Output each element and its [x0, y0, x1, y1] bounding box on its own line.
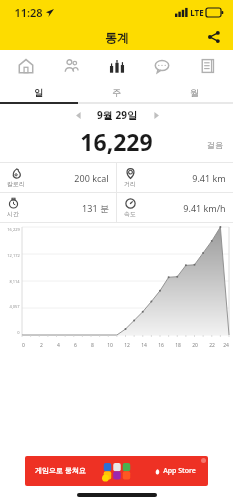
staticText: 일 [34, 87, 43, 98]
button[interactable]: Chat [142, 51, 182, 81]
staticText: 131 분 [82, 202, 109, 214]
staticText: 4,057 [9, 304, 20, 309]
button[interactable]: Statistics [97, 51, 137, 81]
staticText: 2 [40, 342, 43, 349]
staticText: 20 [192, 342, 198, 349]
staticText: 14 [141, 342, 147, 349]
staticText: LTE [190, 7, 204, 18]
button[interactable]: 주 [77, 82, 155, 102]
staticText: 16,229 [7, 227, 20, 232]
staticText: 6 [74, 342, 77, 349]
staticText: 거리 [124, 180, 136, 188]
staticText: 4 [57, 342, 60, 349]
staticText: 0 [22, 342, 25, 349]
staticText: 11:28 [14, 5, 43, 20]
staticText: 12 [124, 342, 130, 349]
button[interactable]: 시간 [0, 193, 116, 222]
staticText: 8,114 [9, 279, 20, 284]
staticText: 칼로리 [7, 180, 25, 188]
button[interactable]: 일 [0, 82, 77, 102]
button[interactable]: 거리 [117, 163, 233, 192]
staticText: 속도 [124, 210, 136, 218]
button[interactable]: Previous day [69, 106, 87, 124]
button[interactable]: Home [6, 51, 46, 81]
staticText: 16 [158, 342, 164, 349]
staticText: 9월 29일 [97, 108, 137, 122]
staticText: 24 [223, 342, 229, 349]
staticText: 18 [175, 342, 181, 349]
staticText: 12,172 [7, 253, 20, 258]
staticText: 게임으로 뭉쳐요 [35, 466, 86, 476]
staticText: 9.41 km [192, 172, 226, 184]
staticText: 10 [107, 342, 113, 349]
button[interactable]: Next day [147, 106, 165, 124]
staticText: 통계 [105, 30, 129, 45]
button[interactable]: 게임으로 뭉쳐요 [25, 456, 208, 486]
button[interactable]: Share [203, 26, 225, 48]
staticText: 0 [17, 330, 20, 335]
staticText: App Store [163, 466, 196, 476]
staticText: 월 [190, 87, 199, 98]
button[interactable]: 칼로리 [0, 163, 116, 192]
staticText: 시간 [7, 210, 19, 218]
button[interactable]: More [188, 51, 228, 81]
button[interactable]: Friends [51, 51, 91, 81]
staticText: 걸음 [207, 140, 223, 150]
staticText: 200 kcal [74, 172, 109, 184]
staticText: 9.41 km/h [183, 202, 226, 214]
button[interactable]: 속도 [117, 193, 233, 222]
staticText: 16,229 [80, 126, 153, 156]
button[interactable]: 월 [155, 82, 233, 102]
staticText: 8 [91, 342, 94, 349]
staticText: 22 [209, 342, 215, 349]
staticText: 주 [112, 87, 121, 98]
